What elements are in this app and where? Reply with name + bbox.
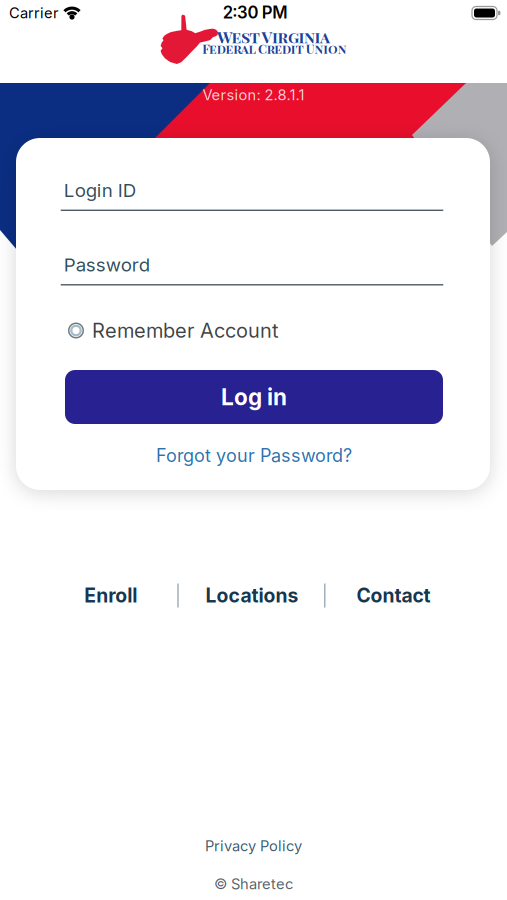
staticText: Contact	[357, 584, 431, 607]
staticText: Version: 2.8.1.1	[202, 86, 304, 104]
staticText: Carrier	[9, 4, 59, 22]
staticText: Remember Account	[92, 318, 279, 343]
button[interactable]: Password	[61, 255, 443, 284]
staticText: West Virginia	[217, 26, 330, 47]
staticText: Log in	[221, 383, 287, 411]
button[interactable]: Locations	[205, 584, 298, 607]
staticText: Login ID	[64, 179, 136, 202]
button[interactable]: Login ID	[61, 180, 443, 209]
staticText: 2:30 PM	[223, 2, 287, 23]
button[interactable]: Privacy Policy	[205, 837, 302, 855]
staticText: Federal Credit Union	[202, 40, 347, 57]
staticText: © Sharetec	[214, 875, 293, 893]
staticText: Password	[64, 253, 150, 276]
button[interactable]: Enroll	[84, 584, 137, 607]
staticText: Enroll	[84, 584, 137, 607]
button[interactable]: Contact	[357, 584, 431, 607]
staticText: Privacy Policy	[205, 837, 302, 855]
staticText: Locations	[205, 584, 298, 607]
button[interactable]: Log in	[65, 370, 443, 424]
button[interactable]: Remember Account	[61, 318, 443, 343]
staticText: Forgot your Password?	[156, 445, 352, 466]
button[interactable]: Forgot your Password?	[156, 445, 352, 466]
